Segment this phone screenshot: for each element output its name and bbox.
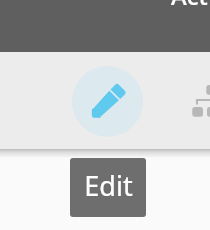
button[interactable]: Share [186,80,210,120]
button[interactable]: Act [0,0,210,52]
staticText: Edit [84,167,133,204]
staticText: Act [171,0,208,12]
button[interactable]: Edit [70,158,146,217]
button[interactable]: Edit [72,66,143,137]
